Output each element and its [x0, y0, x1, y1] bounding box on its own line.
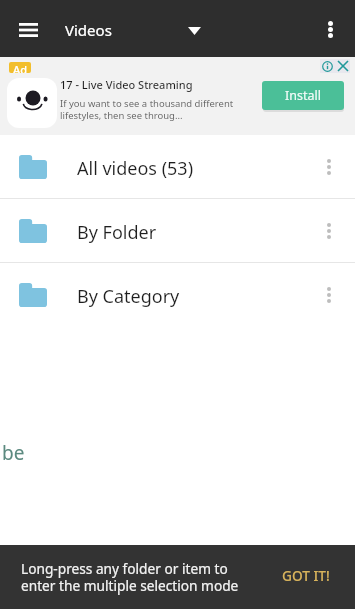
button[interactable]: GOT IT! [274, 558, 338, 593]
button[interactable]: More options for By Folder [307, 209, 351, 253]
button[interactable]: Open navigation drawer [8, 10, 48, 50]
button[interactable]: All videos (53) [0, 135, 355, 198]
staticText: be [2, 440, 25, 466]
staticText: By Folder [77, 220, 157, 245]
button[interactable]: More options for All videos (53) [307, 145, 351, 189]
button[interactable]: By Category [0, 263, 355, 326]
staticText: 17 - Live Video Streaming [60, 77, 193, 92]
staticText: Ad [13, 62, 28, 73]
button[interactable]: More options for By Category [307, 273, 351, 317]
button[interactable]: Ad info [320, 59, 335, 73]
button[interactable]: Close ad [335, 59, 350, 73]
staticText: Videos [65, 20, 112, 40]
staticText: If you want to see a thousand different … [60, 97, 234, 122]
button[interactable]: Install [262, 81, 344, 110]
staticText: By Category [77, 284, 180, 309]
button[interactable]: Sort videos [174, 11, 214, 51]
staticText: Install [285, 87, 321, 104]
staticText: All videos (53) [77, 156, 194, 181]
staticText: GOT IT! [282, 566, 330, 585]
button[interactable]: By Folder [0, 199, 355, 262]
button[interactable]: More options [308, 7, 352, 51]
staticText: Long-press any folder or item to enter t… [21, 559, 239, 595]
